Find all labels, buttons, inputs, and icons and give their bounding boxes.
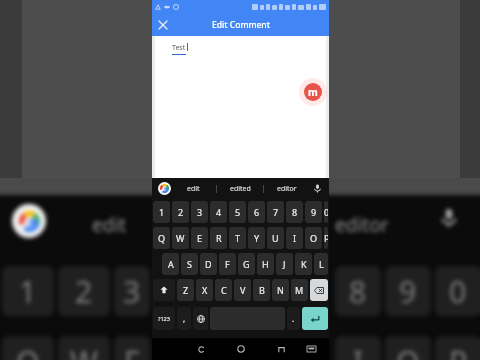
button[interactable]: 9: [305, 201, 322, 223]
button[interactable]: Backspace: [310, 279, 328, 301]
button[interactable]: 8: [286, 201, 303, 223]
staticText: 0: [324, 206, 328, 218]
button[interactable]: A: [162, 253, 179, 275]
staticText: Z: [183, 284, 189, 296]
button[interactable]: W: [172, 227, 189, 249]
button[interactable]: editor: [264, 178, 310, 199]
staticText: O: [396, 341, 420, 360]
staticText: 2: [178, 206, 184, 218]
staticText: I: [293, 232, 297, 244]
staticText: L: [319, 258, 324, 270]
button[interactable]: Voice input: [310, 181, 325, 196]
button[interactable]: 4: [210, 201, 227, 223]
button[interactable]: Enter: [302, 307, 328, 330]
button[interactable]: Y: [248, 227, 265, 249]
button[interactable]: J: [276, 253, 293, 275]
staticText: 9: [399, 271, 417, 312]
button[interactable]: M: [291, 279, 308, 301]
staticText: editor: [335, 212, 389, 238]
button[interactable]: edited: [217, 178, 263, 199]
staticText: S: [187, 258, 192, 270]
staticText: Q: [158, 232, 166, 244]
staticText: C: [221, 284, 227, 296]
staticText: 3: [123, 271, 141, 312]
button[interactable]: Z: [177, 279, 194, 301]
staticText: 6: [254, 206, 260, 218]
button[interactable]: G: [238, 253, 255, 275]
staticText: V: [240, 284, 246, 296]
button[interactable]: H: [257, 253, 274, 275]
staticText: A: [168, 258, 174, 270]
button[interactable]: T: [229, 227, 246, 249]
button[interactable]: 2: [172, 201, 189, 223]
button[interactable]: 6: [248, 201, 265, 223]
staticText: X: [202, 284, 208, 296]
staticText: B: [259, 284, 265, 296]
staticText: G: [243, 258, 250, 270]
staticText: W: [70, 341, 98, 360]
button[interactable]: Home: [221, 338, 261, 360]
staticText: 4: [216, 206, 222, 218]
button[interactable]: Shift: [153, 279, 175, 301]
button[interactable]: P: [324, 227, 328, 249]
staticText: 8: [349, 271, 367, 312]
staticText: Q: [16, 341, 40, 360]
staticText: 7: [273, 206, 279, 218]
button[interactable]: V: [234, 279, 251, 301]
button[interactable]: Q: [153, 227, 170, 249]
button[interactable]: R: [210, 227, 227, 249]
staticText: M: [295, 284, 304, 296]
staticText: Test: [172, 43, 186, 53]
button[interactable]: 5: [229, 201, 246, 223]
button[interactable]: Comma: [177, 307, 191, 330]
button[interactable]: N: [272, 279, 289, 301]
button[interactable]: F: [219, 253, 236, 275]
button[interactable]: Google: [158, 182, 171, 195]
staticText: editor: [277, 184, 297, 194]
staticText: O: [310, 232, 318, 244]
button[interactable]: O: [305, 227, 322, 249]
staticText: U: [272, 232, 279, 244]
button[interactable]: U: [267, 227, 284, 249]
staticText: P: [324, 232, 328, 244]
staticText: E: [124, 341, 141, 360]
staticText: Edit Comment: [212, 19, 270, 31]
button[interactable]: Back: [182, 338, 221, 360]
staticText: ?123: [158, 315, 170, 322]
staticText: I: [353, 341, 364, 360]
button[interactable]: 7: [267, 201, 284, 223]
staticText: E: [197, 232, 203, 244]
button[interactable]: D: [200, 253, 217, 275]
staticText: 3: [197, 206, 203, 218]
button[interactable]: 0: [324, 201, 328, 223]
staticText: .: [292, 313, 295, 324]
staticText: 1: [19, 271, 37, 312]
staticText: 2: [75, 271, 93, 312]
button[interactable]: Close: [152, 14, 174, 36]
button[interactable]: X: [196, 279, 213, 301]
staticText: J: [283, 258, 286, 270]
staticText: T: [235, 232, 241, 244]
button[interactable]: Change language: [193, 307, 208, 330]
button[interactable]: 3: [191, 201, 208, 223]
button[interactable]: L: [314, 253, 328, 275]
button[interactable]: E: [191, 227, 208, 249]
staticText: K: [301, 258, 307, 270]
staticText: 0: [449, 271, 467, 312]
button[interactable]: S: [181, 253, 198, 275]
button[interactable]: Recent apps: [261, 338, 301, 360]
button[interactable]: Hide keyboard: [301, 338, 321, 360]
staticText: 8: [292, 206, 298, 218]
button[interactable]: 1: [153, 201, 170, 223]
button[interactable]: ?123: [153, 307, 175, 330]
button[interactable]: C: [215, 279, 232, 301]
button[interactable]: Chat head: [299, 78, 327, 106]
button[interactable]: B: [253, 279, 270, 301]
button[interactable]: edit: [171, 178, 216, 199]
button[interactable]: K: [295, 253, 312, 275]
staticText: Y: [254, 232, 260, 244]
staticText: edit: [92, 212, 127, 238]
button[interactable]: Period: [287, 307, 300, 330]
button[interactable]: I: [286, 227, 303, 249]
